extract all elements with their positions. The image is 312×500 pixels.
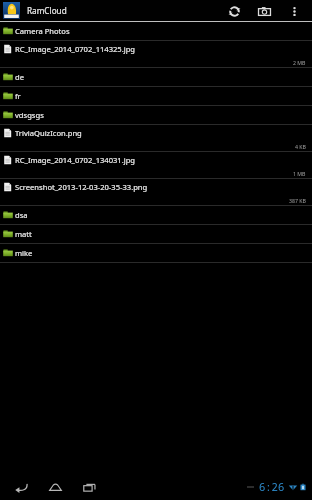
button[interactable]: fr bbox=[0, 87, 312, 106]
staticText: fr bbox=[15, 91, 21, 101]
button[interactable]: Back bbox=[8, 474, 34, 500]
button[interactable]: More options bbox=[285, 2, 303, 20]
staticText: vdsgsgs bbox=[15, 110, 44, 120]
button[interactable]: RC_Image_2014_0702_114325.jpg bbox=[0, 41, 312, 68]
staticText: RC_Image_2014_0702_114325.jpg bbox=[15, 44, 136, 54]
staticText: 1 MB bbox=[293, 170, 306, 177]
button[interactable]: Home bbox=[42, 474, 68, 500]
staticText: TriviaQuizIcon.png bbox=[15, 128, 82, 138]
staticText: 2 MB bbox=[293, 59, 306, 66]
button[interactable]: vdsgsgs bbox=[0, 106, 312, 125]
button[interactable]: TriviaQuizIcon.png bbox=[0, 125, 312, 152]
button[interactable]: Recent apps bbox=[76, 474, 102, 500]
button[interactable]: dsa bbox=[0, 206, 312, 225]
staticText: dsa bbox=[15, 210, 28, 220]
button[interactable]: App icon bbox=[3, 2, 20, 19]
button[interactable]: Screenshot_2013-12-03-20-35-33.png bbox=[0, 179, 312, 206]
staticText: Screenshot_2013-12-03-20-35-33.png bbox=[15, 182, 148, 192]
staticText: 387 KB bbox=[289, 197, 306, 204]
staticText: 4 KB bbox=[295, 143, 306, 150]
staticText: Camera Photos bbox=[15, 26, 70, 36]
button[interactable]: mike bbox=[0, 244, 312, 263]
staticText: matt bbox=[15, 229, 32, 239]
staticText: mike bbox=[15, 248, 33, 258]
button[interactable]: RC_Image_2014_0702_134031.jpg bbox=[0, 152, 312, 179]
staticText: RamCloud bbox=[27, 5, 67, 16]
staticText: de bbox=[15, 72, 24, 82]
button[interactable]: Refresh bbox=[225, 2, 243, 20]
button[interactable]: matt bbox=[0, 225, 312, 244]
button[interactable]: de bbox=[0, 68, 312, 87]
button[interactable]: Camera Photos bbox=[0, 22, 312, 41]
button[interactable]: Camera bbox=[255, 2, 273, 20]
staticText: 6:26 bbox=[259, 480, 285, 494]
staticText: RC_Image_2014_0702_134031.jpg bbox=[15, 155, 136, 165]
